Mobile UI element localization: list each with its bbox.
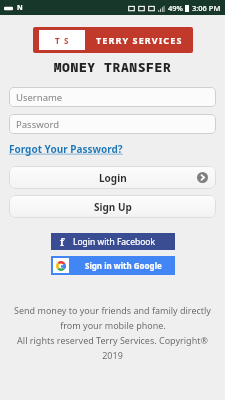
- staticText: MONEY TRANSFER: [0, 58, 225, 76]
- button[interactable]: T S: [33, 27, 193, 53]
- button[interactable]: Username: [9, 87, 216, 107]
- button[interactable]: Sign in with Google: [51, 256, 175, 275]
- button[interactable]: f: [51, 233, 175, 250]
- staticText: All rights reserved Terry Services. Copy…: [17, 334, 208, 346]
- staticText: Username: [16, 91, 63, 104]
- staticText: T S: [55, 35, 70, 46]
- staticText: 2019: [102, 349, 123, 361]
- staticText: N: [17, 3, 23, 13]
- staticText: f: [60, 235, 65, 249]
- staticText: Send money to your friends and family di…: [14, 304, 211, 316]
- staticText: Sign in with Google: [85, 260, 162, 271]
- button[interactable]: Sign Up: [9, 195, 216, 218]
- button[interactable]: Login: [9, 166, 216, 189]
- staticText: Sign Up: [94, 200, 132, 214]
- button[interactable]: Forgot Your Password?: [9, 141, 123, 157]
- staticText: from your mobile phone.: [60, 319, 166, 331]
- staticText: 3:06 PM: [192, 3, 221, 13]
- button[interactable]: Password: [9, 114, 216, 134]
- staticText: Login: [99, 171, 127, 185]
- staticText: 49%: [168, 3, 183, 13]
- staticText: Forgot Your Password?: [9, 142, 123, 156]
- staticText: Login with Facebook: [73, 236, 155, 248]
- staticText: Password: [16, 118, 59, 131]
- staticText: TERRY SERVICES: [96, 34, 183, 46]
